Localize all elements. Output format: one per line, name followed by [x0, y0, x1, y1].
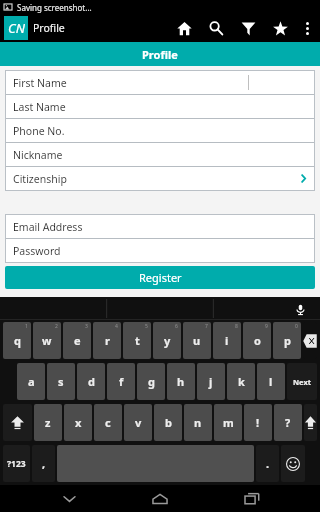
button[interactable]: Home [168, 14, 200, 42]
staticText: g [148, 374, 155, 389]
button[interactable]: Nickname [6, 143, 314, 166]
staticText: Next [293, 377, 312, 387]
button[interactable]: q [3, 322, 31, 359]
button[interactable]: Voice input [289, 298, 311, 320]
staticText: a [28, 374, 35, 389]
staticText: r [105, 333, 110, 348]
button[interactable]: f [107, 363, 135, 400]
button[interactable]: Logo [4, 16, 28, 40]
staticText: 5 [145, 323, 148, 330]
staticText: . [266, 456, 270, 471]
button[interactable]: Shift [3, 404, 32, 441]
button[interactable]: a [17, 363, 45, 400]
button[interactable]: k [227, 363, 255, 400]
button[interactable]: b [154, 404, 182, 441]
staticText: k [238, 374, 245, 389]
button[interactable]: Hide keyboard [46, 485, 92, 512]
button[interactable]: z [34, 404, 62, 441]
button[interactable]: Recent apps [229, 485, 275, 512]
button[interactable]: d [77, 363, 105, 400]
staticText: o [254, 333, 261, 348]
button[interactable]: c [94, 404, 122, 441]
button[interactable]: Email Address [6, 215, 314, 238]
staticText: 2 [55, 323, 58, 330]
staticText: Register [139, 270, 182, 285]
button[interactable]: o [243, 322, 271, 359]
button[interactable]: l [257, 363, 285, 400]
button[interactable]: Register [5, 266, 315, 289]
button[interactable]: ? [274, 404, 302, 441]
staticText: f [119, 374, 124, 389]
staticText: Phone No. [13, 124, 65, 138]
staticText: Email Address [13, 220, 83, 234]
button[interactable]: p [273, 322, 301, 359]
staticText: , [42, 456, 46, 471]
button[interactable]: ! [244, 404, 272, 441]
button[interactable]: y [153, 322, 181, 359]
staticText: 8 [235, 323, 238, 330]
button[interactable]: s [47, 363, 75, 400]
staticText: u [193, 333, 201, 348]
button[interactable]: n [184, 404, 212, 441]
button[interactable]: . [256, 445, 279, 482]
staticText: e [74, 333, 81, 348]
button[interactable]: r [93, 322, 121, 359]
button[interactable]: Password [6, 239, 314, 262]
button[interactable]: Search [200, 14, 232, 42]
staticText: 4 [115, 323, 118, 330]
button[interactable]: i [213, 322, 241, 359]
button[interactable]: Last Name [6, 95, 314, 118]
staticText: z [45, 415, 51, 430]
staticText: v [135, 415, 142, 430]
button[interactable]: First Name [6, 71, 314, 94]
staticText: i [225, 333, 229, 348]
button[interactable]: Filter [232, 14, 264, 42]
staticText: 6 [175, 323, 178, 330]
button[interactable]: e [63, 322, 91, 359]
staticText: Nickname [13, 148, 63, 162]
button[interactable]: Favorites [264, 14, 296, 42]
staticText: First Name [13, 76, 67, 90]
button[interactable]: m [214, 404, 242, 441]
button[interactable]: h [167, 363, 195, 400]
button[interactable]: Next [287, 363, 317, 400]
staticText: l [269, 374, 273, 389]
staticText: y [164, 333, 171, 348]
staticText: Saving screenshot... [17, 2, 92, 13]
button[interactable]: Phone No. [6, 119, 314, 142]
staticText: ?123 [7, 458, 26, 470]
staticText: m [223, 415, 234, 430]
staticText: b [165, 415, 172, 430]
staticText: CN [8, 19, 25, 37]
staticText: w [42, 333, 52, 348]
staticText: n [194, 415, 202, 430]
button[interactable]: w [33, 322, 61, 359]
staticText: Citizenship [13, 172, 67, 186]
staticText: ? [285, 415, 291, 430]
staticText: h [177, 374, 185, 389]
staticText: q [14, 333, 21, 348]
staticText: ! [256, 415, 260, 430]
button[interactable]: t [123, 322, 151, 359]
button[interactable]: , [32, 445, 55, 482]
button[interactable]: u [183, 322, 211, 359]
button[interactable]: Shift [304, 404, 317, 441]
button[interactable]: Backspace [303, 322, 317, 359]
button[interactable]: Home [137, 485, 183, 512]
button[interactable]: ?123 [3, 445, 30, 482]
button[interactable]: More options [296, 14, 318, 42]
staticText: j [209, 374, 213, 389]
staticText: 9 [265, 323, 268, 330]
staticText: Profile [142, 47, 178, 62]
staticText: 7 [205, 323, 208, 330]
button[interactable]: j [197, 363, 225, 400]
staticText: d [88, 374, 95, 389]
staticText: 1 [25, 323, 28, 330]
button[interactable]: g [137, 363, 165, 400]
button[interactable]: Citizenship [6, 167, 314, 190]
staticText: x [75, 415, 82, 430]
button[interactable]: Emoji [281, 445, 305, 482]
button[interactable]: x [64, 404, 92, 441]
button[interactable]: v [124, 404, 152, 441]
